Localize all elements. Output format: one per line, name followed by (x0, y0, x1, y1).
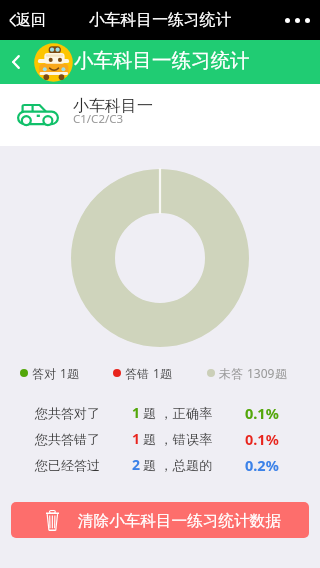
staticText: 小车科目一练习统计 (89, 10, 232, 30)
button[interactable]: 小车科目一 (0, 84, 320, 146)
staticText: 0.1% (245, 429, 279, 449)
staticText: 题 (67, 366, 79, 381)
staticText: 2 (132, 455, 141, 474)
button[interactable]: Back (0, 40, 32, 84)
staticText: 题 ，错误率 (143, 430, 213, 448)
staticText: 未答 (219, 365, 247, 381)
button[interactable]: More options (285, 0, 310, 40)
staticText: 题 ，总题的 (143, 456, 213, 474)
staticText: 1 (132, 403, 141, 422)
staticText: 0.2% (245, 455, 279, 475)
staticText: 1 (153, 365, 160, 381)
staticText: 您共答错了 (35, 431, 100, 447)
staticText: 答错 (125, 365, 153, 381)
staticText: 小车科目一 (73, 96, 153, 116)
staticText: 小车科目一练习统计 (74, 48, 250, 73)
staticText: 0.1% (245, 403, 279, 423)
staticText: 您已经答过 (35, 457, 100, 473)
button[interactable]: 返回 (9, 0, 46, 40)
staticText: 1309 (247, 365, 275, 381)
staticText: 题 (275, 366, 287, 381)
staticText: 1 (132, 429, 141, 448)
staticText: 答对 (32, 365, 60, 381)
button[interactable]: 清除小车科目一练习统计数据 (11, 502, 309, 538)
staticText: 返回 (16, 11, 46, 30)
staticText: 您共答对了 (35, 405, 100, 421)
staticText: 1 (60, 365, 67, 381)
staticText: 题 ，正确率 (143, 404, 213, 422)
staticText: 清除小车科目一练习统计数据 (78, 511, 281, 531)
staticText: C1/C2/C3 (73, 111, 124, 127)
staticText: 题 (160, 366, 172, 381)
